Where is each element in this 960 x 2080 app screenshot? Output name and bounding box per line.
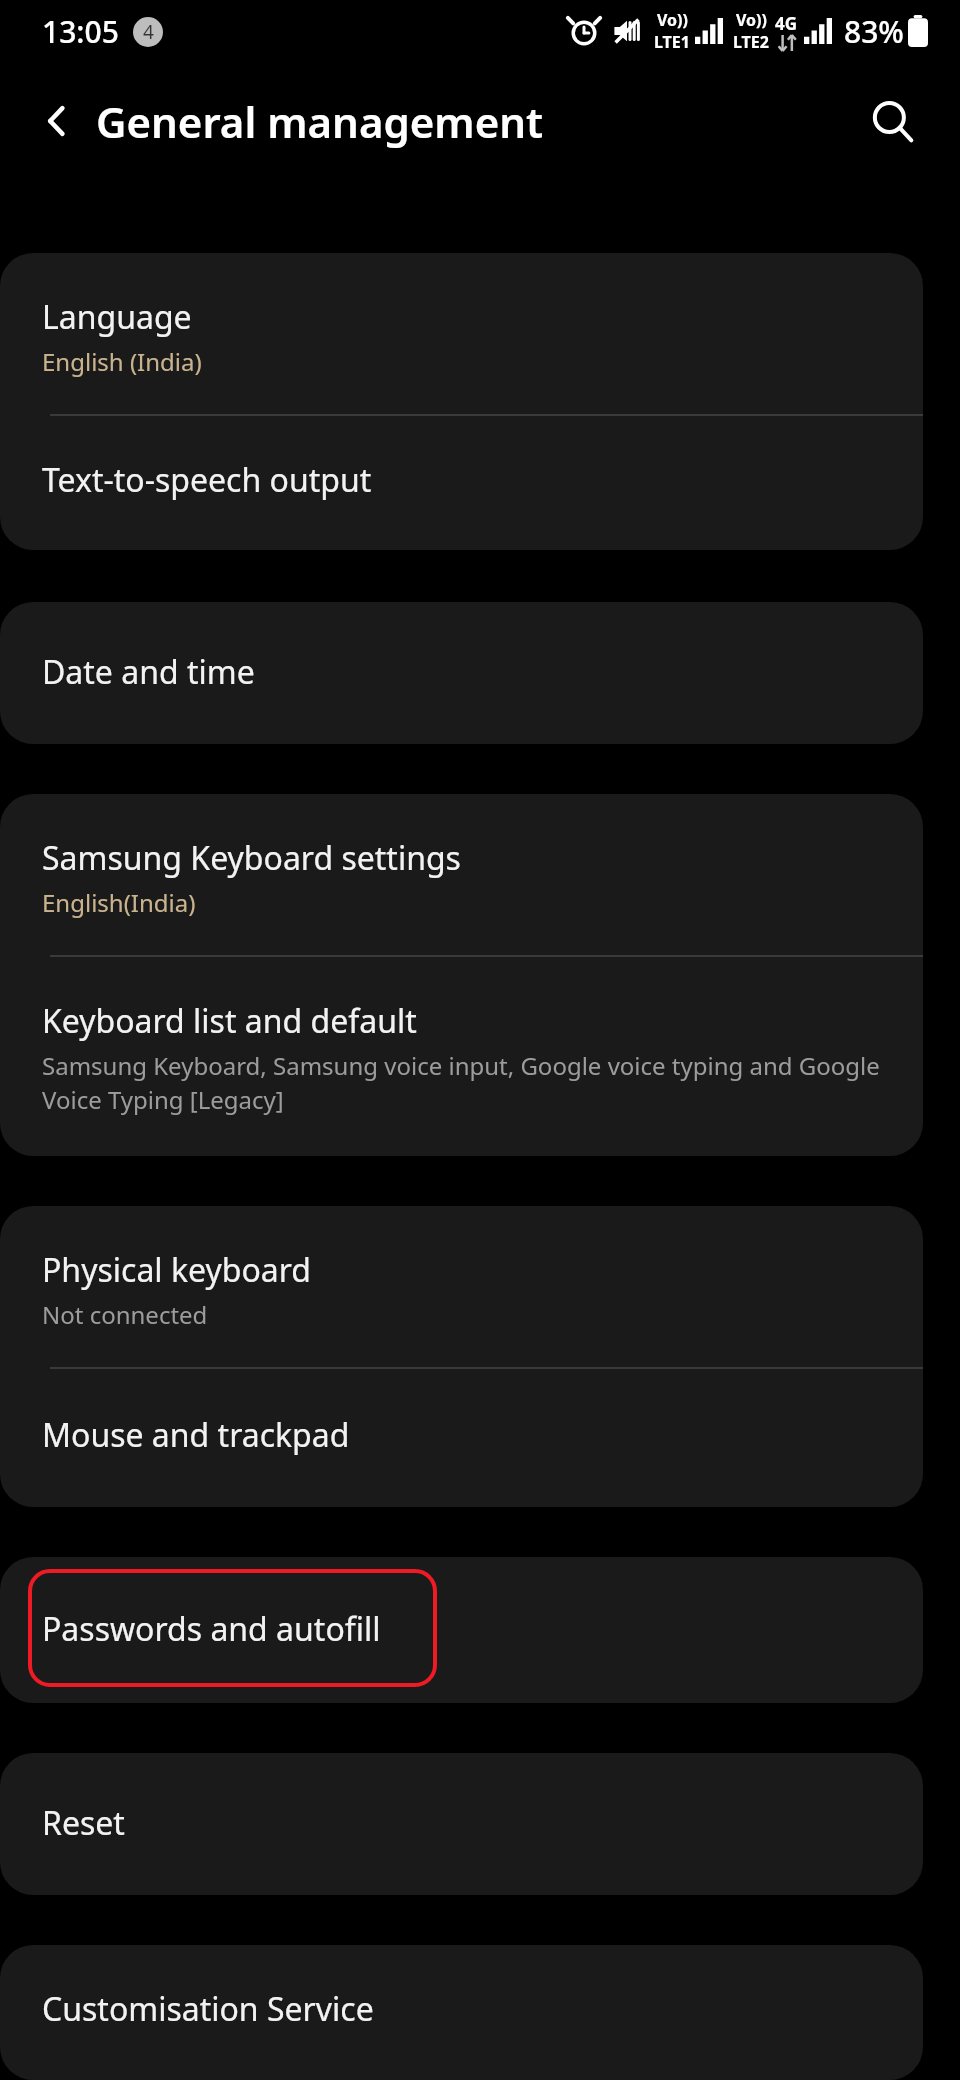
staticText: Vo)) (657, 9, 688, 31)
staticText: Customisation Service (42, 1987, 374, 2031)
staticText: Text-to-speech output (42, 458, 372, 502)
button[interactable]: Physical keyboard (0, 1206, 923, 1367)
staticText: Keyboard list and default (42, 999, 417, 1043)
staticText: Reset (42, 1801, 125, 1845)
staticText: Samsung Keyboard settings (42, 836, 461, 880)
button[interactable]: Language (0, 253, 923, 414)
button[interactable]: Keyboard list and default (0, 957, 923, 1156)
staticText: English(India) (42, 886, 196, 919)
button[interactable]: Passwords and autofill (0, 1557, 923, 1703)
staticText: Physical keyboard (42, 1248, 311, 1292)
button[interactable]: Reset (0, 1753, 923, 1895)
button[interactable]: Samsung Keyboard settings (0, 794, 923, 955)
button[interactable]: Date and time (0, 602, 923, 744)
button[interactable]: Back (22, 86, 92, 156)
staticText: English (India) (42, 345, 202, 378)
button[interactable]: Search (854, 83, 930, 159)
staticText: Samsung Keyboard, Samsung voice input, G… (42, 1049, 887, 1116)
staticText: General management (96, 93, 544, 150)
button[interactable]: Mouse and trackpad (0, 1369, 923, 1507)
staticText: 83% (844, 11, 904, 52)
staticText: Language (42, 295, 192, 339)
button[interactable]: Text-to-speech output (0, 416, 923, 550)
staticText: 4G (775, 12, 798, 35)
staticText: LTE1 (654, 31, 690, 53)
staticText: Passwords and autofill (42, 1607, 381, 1651)
staticText: Vo)) (736, 9, 767, 31)
staticText: Date and time (42, 650, 255, 694)
staticText: 4 (143, 19, 154, 45)
staticText: Mouse and trackpad (42, 1413, 350, 1457)
staticText: Not connected (42, 1298, 208, 1331)
staticText: LTE2 (733, 31, 769, 53)
staticText: 13:05 (42, 11, 119, 52)
button[interactable]: Customisation Service (0, 1945, 923, 2080)
